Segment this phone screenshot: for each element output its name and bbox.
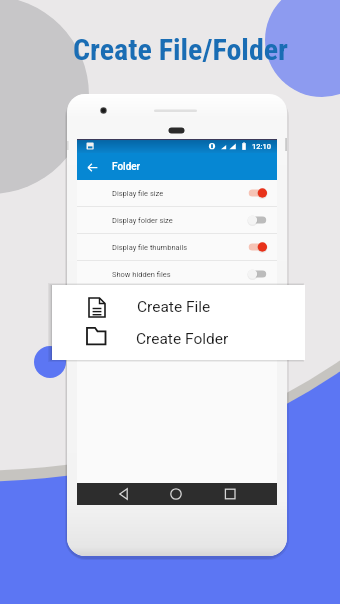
staticText: Display file size	[112, 189, 164, 198]
button[interactable]: Show folder contents	[77, 315, 277, 341]
button[interactable]: Show hidden files	[77, 261, 277, 287]
staticText: Create File	[137, 298, 211, 316]
button[interactable]: Display file size	[77, 180, 277, 206]
staticText: Create File/Folder	[73, 32, 289, 67]
staticText: Show hidden files	[112, 270, 171, 279]
button[interactable]: Create Folder	[52, 323, 305, 355]
staticText: Folder	[112, 161, 141, 173]
staticText: 12:10	[252, 142, 272, 151]
staticText: Create Folder	[136, 330, 229, 348]
staticText: Display folder size	[112, 216, 173, 225]
button[interactable]: Back	[77, 153, 277, 180]
button[interactable]: Back	[81, 156, 103, 178]
button[interactable]: Create File	[52, 291, 305, 323]
button[interactable]: Display file thumbnails	[77, 234, 277, 260]
staticText: Display file thumbnails	[112, 243, 188, 252]
staticText: Show file extensions	[112, 297, 181, 306]
button[interactable]: Display folder size	[77, 207, 277, 233]
button[interactable]: Show file extensions	[77, 288, 277, 314]
